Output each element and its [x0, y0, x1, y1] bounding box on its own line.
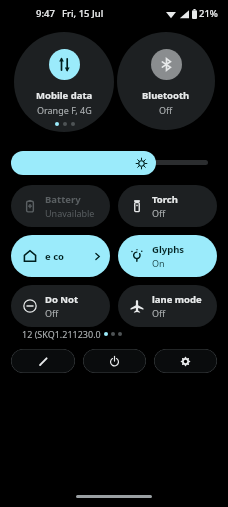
staticText: 21% — [199, 7, 218, 20]
staticText: Do Not Disturb — [45, 293, 102, 306]
staticText: Torch — [152, 193, 178, 206]
staticText: lane mode — [152, 293, 202, 306]
button[interactable]: Settings — [154, 349, 217, 373]
staticText: 9:47 — [36, 7, 55, 20]
staticText: Off — [152, 207, 166, 219]
staticText: Off — [152, 307, 166, 319]
button[interactable]: Power — [83, 349, 146, 373]
staticText: Fri, 15 Jul — [62, 7, 104, 20]
button[interactable]: Brightness — [11, 151, 156, 175]
staticText: Mobile data — [36, 89, 93, 102]
button[interactable]: Mobile data — [14, 32, 114, 132]
staticText: Battery Saver — [45, 193, 102, 206]
button[interactable]: e controls — [11, 235, 110, 277]
staticText: Bluetooth — [142, 89, 190, 102]
button[interactable]: Edit tiles — [11, 349, 75, 373]
staticText: 12 (SKQ1.211230.0 — [22, 328, 101, 340]
staticText: Off — [45, 307, 59, 319]
button[interactable]: Battery Saver — [11, 185, 110, 227]
staticText: Orange F, 4G — [37, 104, 92, 116]
button[interactable]: Torch — [118, 185, 217, 227]
button[interactable]: Do Not Disturb — [11, 285, 110, 327]
staticText: Glyphs — [152, 243, 185, 256]
button[interactable]: lane mode — [118, 285, 217, 327]
staticText: On — [152, 257, 165, 269]
staticText: Off — [159, 104, 173, 116]
staticText: Unavailable — [45, 207, 95, 219]
button[interactable]: Bluetooth — [117, 32, 215, 130]
button[interactable]: Glyphs — [118, 235, 217, 277]
staticText: e controls — [45, 250, 69, 263]
